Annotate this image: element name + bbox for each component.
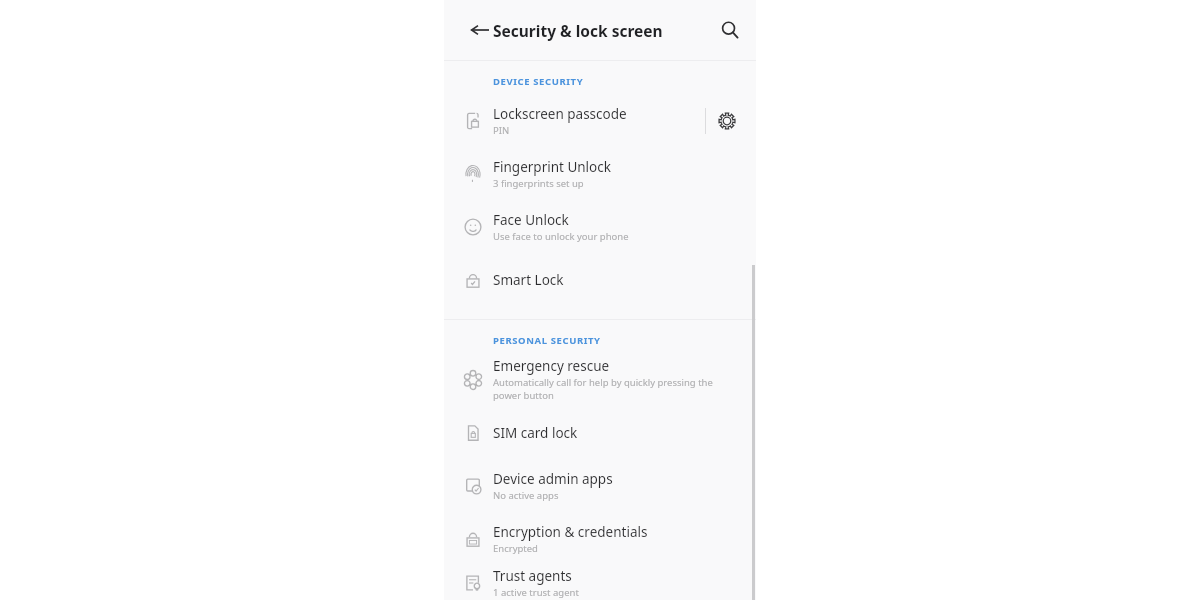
button[interactable]: Emergency rescue [444, 353, 756, 406]
staticText: DEVICE SECURITY [493, 75, 584, 88]
staticText: Lockscreen passcode [493, 105, 627, 123]
button[interactable]: Search [710, 10, 750, 50]
staticText: PERSONAL SECURITY [493, 334, 601, 347]
staticText: Security & lock screen [493, 20, 663, 41]
staticText: Encrypted [493, 542, 733, 555]
staticText: No active apps [493, 489, 733, 502]
button[interactable]: Device admin apps [444, 459, 756, 512]
staticText: Device admin apps [493, 470, 613, 488]
staticText: Encryption & credentials [493, 523, 648, 541]
staticText: Smart Lock [493, 271, 564, 289]
staticText: Trust agents [493, 567, 572, 585]
staticText: SIM card lock [493, 424, 578, 442]
button[interactable]: Trust agents [444, 565, 756, 600]
button[interactable]: Lockscreen passcode settings [706, 100, 748, 142]
staticText: PIN [493, 124, 705, 137]
button[interactable]: Back [460, 10, 500, 50]
button[interactable]: Encryption & credentials [444, 512, 756, 565]
staticText: 1 active trust agent [493, 586, 733, 599]
button[interactable]: Fingerprint Unlock [444, 147, 756, 200]
staticText: Use face to unlock your phone [493, 230, 733, 243]
button[interactable]: Smart Lock [444, 253, 756, 306]
staticText: Automatically call for help by quickly p… [493, 376, 718, 402]
button[interactable]: Face Unlock [444, 200, 756, 253]
button[interactable]: Lockscreen passcode [444, 94, 756, 147]
staticText: Fingerprint Unlock [493, 158, 611, 176]
staticText: 3 fingerprints set up [493, 177, 733, 190]
button[interactable]: SIM card lock [444, 406, 756, 459]
staticText: Emergency rescue [493, 357, 610, 375]
staticText: Face Unlock [493, 211, 569, 229]
